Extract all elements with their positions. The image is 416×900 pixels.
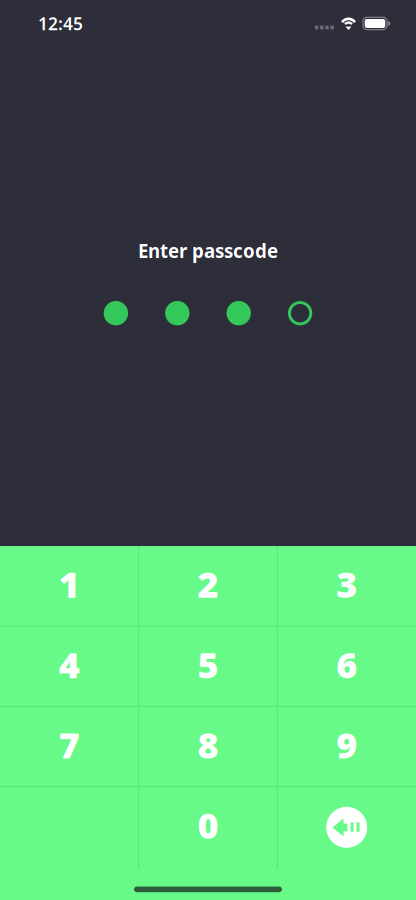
button[interactable]: 4 <box>0 626 139 707</box>
staticText: 0 <box>197 801 218 849</box>
staticText: Enter passcode <box>138 238 278 263</box>
button[interactable]: 1 <box>0 546 139 626</box>
button[interactable]: 7 <box>0 707 139 787</box>
button[interactable]: 0 <box>139 787 277 867</box>
staticText: 5 <box>197 640 218 688</box>
button[interactable]: 3 <box>277 546 416 626</box>
button[interactable]: 6 <box>277 626 416 707</box>
button[interactable]: 8 <box>139 707 277 787</box>
staticText: 1 <box>59 560 80 608</box>
button[interactable]: 2 <box>139 546 277 626</box>
staticText: 2 <box>197 560 218 608</box>
staticText: 12:45 <box>38 12 83 35</box>
button[interactable]: 9 <box>277 707 416 787</box>
staticText: 6 <box>336 640 357 688</box>
button[interactable]: 5 <box>139 626 277 707</box>
staticText: 8 <box>197 721 218 768</box>
staticText: 9 <box>336 721 357 768</box>
staticText: 7 <box>59 721 80 768</box>
staticText: 4 <box>59 640 80 688</box>
staticText: 3 <box>336 560 357 608</box>
button[interactable]: Delete <box>277 787 416 867</box>
